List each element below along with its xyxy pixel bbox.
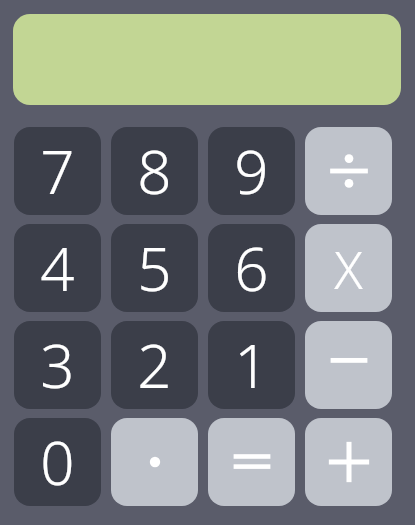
staticText: 4 (40, 227, 75, 309)
button[interactable]: 2 (111, 321, 198, 409)
button[interactable]: Add (305, 418, 392, 506)
staticText: 1 (234, 324, 269, 406)
button[interactable]: 9 (208, 127, 295, 215)
button[interactable]: 5 (111, 224, 198, 312)
button[interactable]: 6 (208, 224, 295, 312)
button[interactable]: Decimal point (111, 418, 198, 506)
button[interactable]: Multiply (305, 224, 392, 312)
button[interactable]: 8 (111, 127, 198, 215)
staticText: 7 (40, 130, 75, 212)
button[interactable]: 1 (208, 321, 295, 409)
staticText: 3 (40, 324, 75, 406)
staticText: 8 (137, 130, 172, 212)
button[interactable]: 0 (14, 418, 101, 506)
staticText: 6 (234, 227, 269, 309)
button[interactable]: 3 (14, 321, 101, 409)
staticText: 5 (137, 227, 172, 309)
button[interactable]: 4 (14, 224, 101, 312)
button[interactable]: Divide (305, 127, 392, 215)
staticText: 2 (137, 324, 172, 406)
staticText: X (334, 233, 363, 304)
button[interactable]: 7 (14, 127, 101, 215)
button[interactable]: Display (13, 14, 401, 105)
button[interactable]: Equals (208, 418, 295, 506)
staticText: 0 (40, 421, 75, 503)
button[interactable]: Subtract (305, 321, 392, 409)
staticText: 9 (234, 130, 269, 212)
